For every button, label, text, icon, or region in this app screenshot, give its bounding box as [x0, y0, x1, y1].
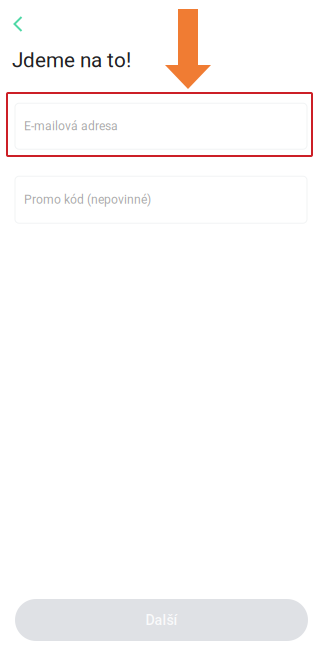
button[interactable]: E-mailová adresa — [15, 103, 307, 149]
staticText: Jdeme na to! — [12, 48, 131, 72]
staticText: Promo kód (nepovinné) — [24, 193, 151, 207]
button[interactable]: Promo kód (nepovinné) — [15, 176, 307, 223]
button[interactable]: Back — [4, 11, 32, 37]
staticText: E-mailová adresa — [24, 119, 118, 133]
button[interactable]: Další — [15, 599, 308, 641]
staticText: Další — [145, 612, 177, 628]
